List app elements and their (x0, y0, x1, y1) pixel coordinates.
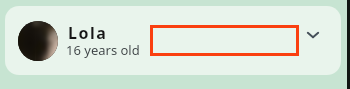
button[interactable]: Expand (300, 22, 326, 48)
button[interactable]: Lola (5, 6, 341, 75)
staticText: Lola (68, 22, 108, 44)
staticText: 16 years old (66, 41, 140, 59)
button[interactable] (150, 25, 299, 56)
